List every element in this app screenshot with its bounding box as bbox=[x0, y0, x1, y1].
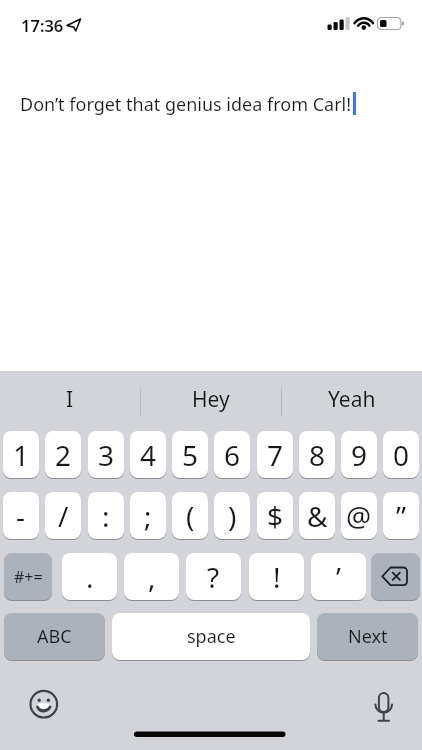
staticText: 5 bbox=[182, 436, 199, 474]
button[interactable]: ( bbox=[172, 492, 208, 539]
staticText: ” bbox=[396, 497, 407, 535]
button[interactable]: 0 bbox=[383, 431, 419, 478]
button[interactable]: 1 bbox=[3, 431, 39, 478]
staticText: - bbox=[16, 497, 26, 535]
button[interactable]: #+= bbox=[4, 553, 52, 600]
staticText: . bbox=[86, 558, 94, 596]
staticText: space bbox=[187, 624, 236, 649]
staticText: Hey bbox=[192, 385, 230, 414]
staticText: #+= bbox=[14, 566, 43, 588]
button[interactable]: ? bbox=[186, 553, 241, 600]
staticText: ’ bbox=[336, 558, 341, 596]
button[interactable]: 3 bbox=[88, 431, 124, 478]
staticText: 9 bbox=[351, 436, 368, 474]
staticText: @ bbox=[346, 497, 372, 535]
staticText: Next bbox=[348, 624, 388, 649]
button[interactable]: . bbox=[62, 553, 117, 600]
staticText: : bbox=[102, 497, 110, 535]
staticText: ; bbox=[144, 497, 152, 535]
button[interactable]: 8 bbox=[299, 431, 335, 478]
button[interactable]: 9 bbox=[341, 431, 377, 478]
button[interactable]: ABC bbox=[4, 613, 105, 660]
staticText: Yeah bbox=[328, 385, 376, 414]
button[interactable]: ” bbox=[383, 492, 419, 539]
staticText: , bbox=[148, 558, 156, 596]
button[interactable]: ; bbox=[130, 492, 166, 539]
button[interactable]: ) bbox=[214, 492, 250, 539]
button[interactable]: : bbox=[88, 492, 124, 539]
button[interactable]: I bbox=[0, 377, 140, 421]
button[interactable]: / bbox=[45, 492, 81, 539]
staticText: 17:36 bbox=[21, 14, 64, 36]
staticText: $ bbox=[267, 497, 284, 535]
staticText: ABC bbox=[37, 624, 72, 649]
staticText: 3 bbox=[98, 436, 115, 474]
staticText: / bbox=[58, 497, 69, 535]
staticText: 7 bbox=[267, 436, 284, 474]
staticText: ) bbox=[228, 497, 237, 535]
staticText: ? bbox=[207, 558, 220, 596]
button[interactable]: - bbox=[3, 492, 39, 539]
button[interactable]: space bbox=[112, 613, 310, 660]
button[interactable] bbox=[371, 553, 420, 600]
staticText: 2 bbox=[55, 436, 72, 474]
button[interactable]: @ bbox=[341, 492, 377, 539]
button[interactable]: ! bbox=[249, 553, 304, 600]
staticText: 0 bbox=[393, 436, 410, 474]
button[interactable]: 6 bbox=[214, 431, 250, 478]
button[interactable]: Yeah bbox=[282, 377, 422, 421]
staticText: 4 bbox=[140, 436, 157, 474]
button[interactable]: $ bbox=[257, 492, 293, 539]
button[interactable]: 4 bbox=[130, 431, 166, 478]
staticText: & bbox=[307, 497, 328, 535]
button[interactable]: Hey bbox=[141, 377, 281, 421]
staticText: ( bbox=[186, 497, 195, 535]
staticText: I bbox=[66, 385, 74, 414]
button[interactable]: & bbox=[299, 492, 335, 539]
button[interactable]: ’ bbox=[311, 553, 366, 600]
button[interactable]: 5 bbox=[172, 431, 208, 478]
button[interactable]: 7 bbox=[257, 431, 293, 478]
staticText: ! bbox=[273, 558, 281, 596]
staticText: 6 bbox=[224, 436, 241, 474]
staticText: 1 bbox=[13, 436, 30, 474]
button[interactable]: , bbox=[124, 553, 179, 600]
button[interactable]: 2 bbox=[45, 431, 81, 478]
button[interactable]: Next bbox=[317, 613, 418, 660]
staticText: Don’t forget that genius idea from Carl! bbox=[20, 92, 352, 117]
staticText: 8 bbox=[309, 436, 326, 474]
